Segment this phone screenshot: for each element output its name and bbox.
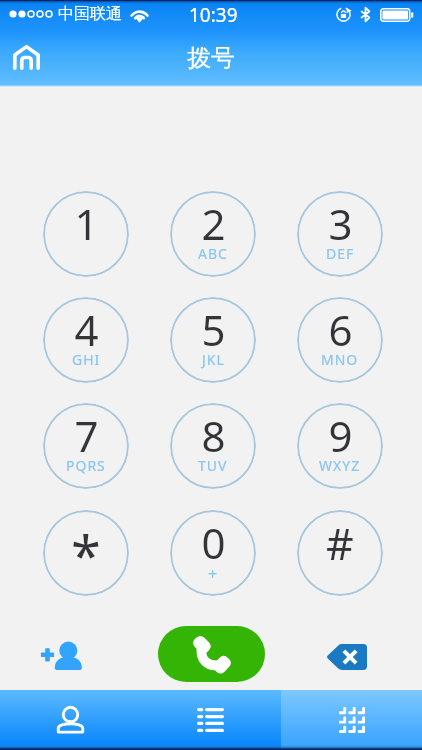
staticText: JKL — [202, 350, 225, 369]
button[interactable]: # — [297, 510, 383, 596]
staticText: + — [208, 563, 219, 585]
button[interactable]: 8 — [170, 403, 256, 489]
button[interactable]: 9 — [297, 403, 383, 489]
button[interactable]: 2 — [170, 191, 256, 277]
staticText: 3 — [328, 195, 353, 252]
staticText: 2 — [201, 195, 226, 252]
button[interactable]: Add contact — [28, 623, 94, 689]
button[interactable]: Home — [3, 34, 49, 80]
button[interactable]: 6 — [297, 297, 383, 383]
button[interactable]: 1 — [43, 191, 129, 277]
button[interactable]: Contacts — [0, 690, 140, 750]
staticText: * — [71, 518, 101, 592]
staticText: # — [326, 514, 354, 573]
staticText: TUV — [198, 456, 228, 475]
staticText: 1 — [74, 195, 99, 252]
staticText: 8 — [201, 407, 226, 464]
button[interactable]: 7 — [43, 403, 129, 489]
button[interactable]: Call — [158, 626, 265, 682]
staticText: 7 — [74, 407, 99, 464]
staticText: DEF — [326, 244, 355, 263]
staticText: 6 — [328, 301, 353, 358]
staticText: ABC — [198, 244, 228, 263]
staticText: 中国联通 — [58, 4, 122, 24]
staticText: WXYZ — [319, 456, 361, 475]
button[interactable]: 5 — [170, 297, 256, 383]
staticText: 9 — [328, 407, 353, 464]
button[interactable]: 4 — [43, 297, 129, 383]
staticText: MNO — [321, 350, 359, 369]
button[interactable]: Backspace — [315, 626, 377, 688]
staticText: GHI — [72, 350, 101, 369]
staticText: 拨号 — [187, 43, 235, 73]
button[interactable]: 3 — [297, 191, 383, 277]
staticText: 10:39 — [189, 2, 238, 28]
staticText: 5 — [201, 301, 226, 358]
staticText: 0 — [201, 514, 226, 571]
staticText: 4 — [74, 301, 99, 358]
button[interactable]: 0 — [170, 510, 256, 596]
button[interactable]: Call log — [140, 690, 281, 750]
staticText: PQRS — [66, 456, 106, 475]
button[interactable]: * — [43, 510, 129, 596]
button[interactable]: Dialpad — [281, 690, 422, 750]
